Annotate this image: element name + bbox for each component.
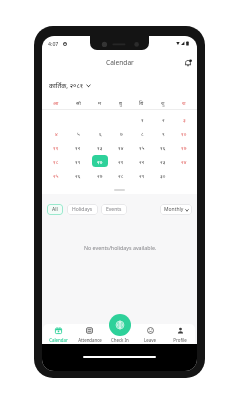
staticText: २१ (118, 158, 124, 165)
button[interactable]: १२ (70, 141, 86, 153)
button[interactable]: २९ (134, 169, 150, 181)
button[interactable]: Profile (165, 324, 195, 345)
button[interactable]: १४ (113, 141, 129, 153)
button[interactable]: ८ (134, 127, 150, 139)
staticText: २९ (139, 172, 145, 179)
staticText: ८ (141, 130, 144, 137)
staticText: ५ (77, 130, 80, 137)
button[interactable]: १५ (134, 141, 150, 153)
staticText: Leave (144, 337, 156, 343)
staticText: १८ (53, 158, 59, 165)
staticText: Holidays (72, 206, 93, 213)
staticText: २७ (97, 172, 103, 179)
staticText: २३ (160, 158, 166, 165)
button[interactable]: २१ (113, 155, 129, 167)
button[interactable]: ४ (48, 127, 64, 139)
staticText: बु (119, 99, 122, 106)
button[interactable]: २८ (113, 169, 129, 181)
staticText: ३० (160, 172, 166, 179)
staticText: ११ (53, 144, 59, 151)
button[interactable]: ११ (48, 141, 64, 153)
button[interactable]: Notifications (181, 56, 194, 69)
staticText: Calendar (106, 58, 134, 67)
button[interactable]: १० (176, 127, 192, 139)
staticText: कार्तिक, २०८१ (49, 81, 84, 90)
staticText: १२ (75, 144, 81, 151)
staticText: २० (97, 158, 103, 165)
button[interactable]: २७ (92, 169, 108, 181)
staticText: म (98, 99, 102, 106)
staticText: Calendar (49, 337, 68, 343)
button[interactable]: २ (155, 113, 171, 125)
staticText: Events (106, 206, 122, 213)
staticText: ३ (183, 116, 186, 123)
staticText: ९ (162, 130, 165, 137)
button[interactable]: २२ (134, 155, 150, 167)
button[interactable]: ५ (70, 127, 86, 139)
staticText: ७ (120, 130, 123, 137)
staticText: १७ (181, 144, 187, 151)
staticText: Profile (173, 337, 187, 343)
button[interactable]: Holidays (67, 204, 98, 215)
staticText: २ (162, 116, 165, 123)
staticText: २४ (181, 158, 187, 165)
button[interactable]: ३ (176, 113, 192, 125)
staticText: सो (76, 99, 81, 106)
button[interactable]: १६ (155, 141, 171, 153)
button[interactable]: १९ (70, 155, 86, 167)
staticText: 4:07 (48, 40, 59, 47)
button[interactable]: Monthly (160, 204, 192, 215)
button[interactable]: ३० (155, 169, 171, 181)
button[interactable]: Leave (135, 324, 165, 345)
staticText: १९ (75, 158, 81, 165)
staticText: २६ (75, 172, 81, 179)
staticText: श (182, 99, 186, 106)
staticText: शु (161, 99, 165, 106)
button[interactable]: Events (101, 204, 127, 215)
staticText: २२ (139, 158, 145, 165)
staticText: Check In (111, 337, 129, 343)
staticText: All (52, 206, 58, 213)
staticText: ६ (99, 130, 102, 137)
staticText: Attendance (78, 337, 102, 343)
staticText: बि (139, 99, 144, 106)
staticText: २८ (118, 172, 124, 179)
button[interactable]: १७ (176, 141, 192, 153)
button[interactable]: २४ (176, 155, 192, 167)
button[interactable]: Calendar (43, 324, 74, 345)
staticText: आ (53, 99, 59, 106)
staticText: Monthly (164, 206, 184, 213)
button[interactable]: १ (134, 113, 150, 125)
button[interactable]: १८ (48, 155, 64, 167)
staticText: १४ (118, 144, 124, 151)
staticText: १३ (97, 144, 103, 151)
staticText: २५ (53, 172, 59, 179)
button[interactable]: २६ (70, 169, 86, 181)
button[interactable]: १३ (92, 141, 108, 153)
button[interactable]: २० (92, 155, 108, 167)
staticText: ४ (55, 130, 58, 137)
button[interactable]: ६ (92, 127, 108, 139)
button[interactable]: Check In (105, 324, 135, 345)
button[interactable]: Check In (109, 314, 131, 336)
staticText: No events/holidays available. (84, 244, 157, 251)
button[interactable]: कार्तिक, २०८१ (49, 79, 91, 92)
button[interactable]: २३ (155, 155, 171, 167)
button[interactable]: All (47, 204, 63, 215)
staticText: १० (181, 130, 187, 137)
staticText: १ (141, 116, 144, 123)
button[interactable]: २५ (48, 169, 64, 181)
staticText: १६ (160, 144, 166, 151)
staticText: १५ (139, 144, 145, 151)
button[interactable]: ७ (113, 127, 129, 139)
button[interactable]: ९ (155, 127, 171, 139)
button[interactable]: Attendance (74, 324, 105, 345)
